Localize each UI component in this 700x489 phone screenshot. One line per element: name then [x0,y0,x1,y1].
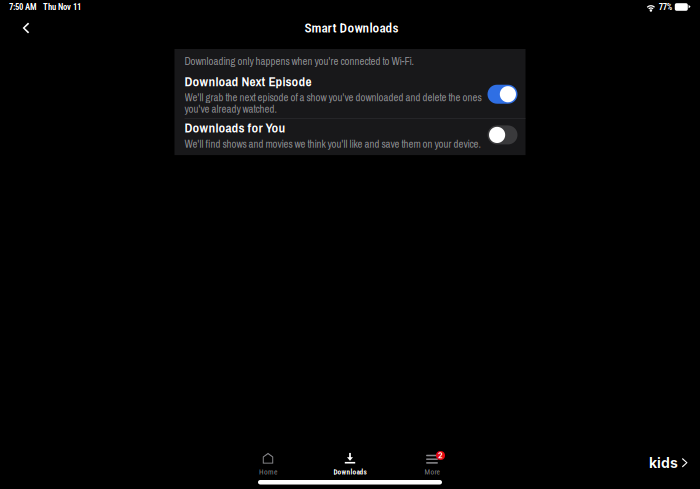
staticText: Smart Downloads [304,20,398,36]
staticText: We'll find shows and movies we think you… [184,137,480,151]
button[interactable]: Downloads [309,449,391,477]
staticText: Home [259,468,277,476]
staticText: Thu Nov 11 [43,2,81,12]
staticText: Download Next Episode [184,72,311,90]
button[interactable]: Back [11,13,41,43]
button[interactable]: Downloads for You [174,119,525,155]
staticText: We'll grab the next episode of a show yo… [184,90,481,116]
button[interactable]: kids [649,454,688,471]
staticText: Downloads [333,468,366,476]
staticText: kids [649,454,678,471]
staticText: Downloads for You [184,119,285,137]
button[interactable]: Download Next Episode [174,70,525,118]
staticText: 2 [438,451,443,460]
staticText: 77% [659,2,673,12]
staticText: 7:50 AM [9,2,37,12]
button[interactable]: More [391,449,473,477]
button[interactable]: Home [227,449,309,477]
staticText: Downloading only happens when you're con… [184,54,413,68]
staticText: More [424,468,439,476]
